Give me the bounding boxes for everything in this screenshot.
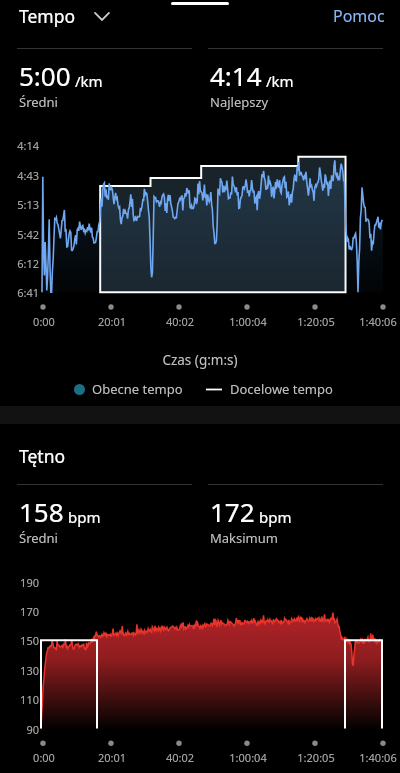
staticText: 170 (8, 604, 39, 619)
staticText: 1:00:04 (218, 314, 278, 329)
staticText: Średni (19, 93, 58, 111)
staticText: Najlepszy (210, 93, 269, 111)
staticText: bpm (68, 507, 101, 527)
staticText: 4:14 (210, 58, 262, 93)
staticText: 4:43 (8, 168, 39, 183)
staticText: Czas (g:m:s) (0, 351, 400, 369)
staticText: 90 (8, 722, 39, 737)
staticText: 190 (8, 575, 39, 590)
staticText: 1:40:06 (348, 750, 400, 765)
staticText: 5:13 (8, 197, 39, 212)
staticText: /km (75, 71, 103, 91)
staticText: Obecne tempo (92, 380, 183, 398)
staticText: Średni (19, 529, 58, 547)
staticText: 5:42 (8, 227, 39, 242)
button[interactable]: Pomoc (333, 5, 385, 27)
staticText: 1:40:06 (348, 314, 400, 329)
staticText: 1:00:04 (218, 750, 278, 765)
staticText: 4:14 (8, 138, 39, 153)
staticText: 172 (210, 494, 255, 529)
staticText: 1:20:05 (286, 314, 346, 329)
staticText: 0:00 (14, 750, 74, 765)
staticText: Maksimum (210, 529, 278, 547)
staticText: bpm (259, 507, 292, 527)
staticText: /km (266, 71, 294, 91)
staticText: 110 (8, 692, 39, 707)
staticText: 20:01 (82, 314, 142, 329)
staticText: 1:20:05 (286, 750, 346, 765)
staticText: 5:00 (19, 58, 71, 93)
staticText: Docelowe tempo (230, 380, 333, 398)
staticText: 158 (19, 494, 64, 529)
staticText: 6:41 (8, 285, 39, 300)
button[interactable]: Tempo (19, 4, 109, 28)
staticText: Tętno (19, 444, 66, 468)
staticText: 20:01 (82, 750, 142, 765)
staticText: 150 (8, 633, 39, 648)
staticText: 6:12 (8, 256, 39, 271)
staticText: 0:00 (14, 314, 74, 329)
staticText: Tempo (19, 4, 76, 28)
staticText: 40:02 (150, 750, 210, 765)
staticText: 40:02 (150, 314, 210, 329)
staticText: 130 (8, 663, 39, 678)
